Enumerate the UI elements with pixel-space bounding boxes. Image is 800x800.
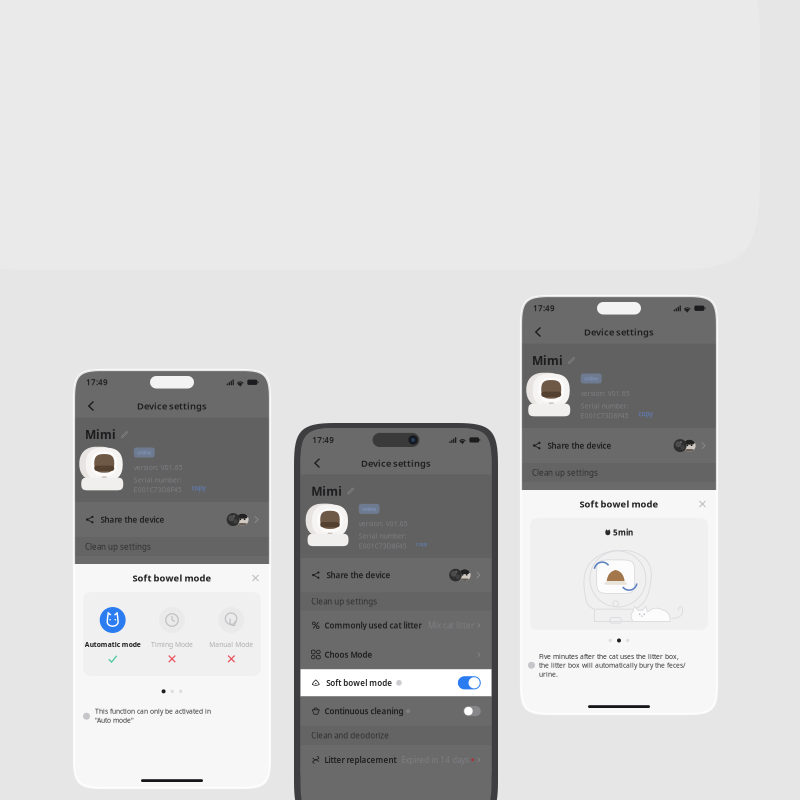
staticText: Clean up settings (532, 467, 598, 478)
staticText: Manual Mode (209, 640, 253, 649)
staticText: Serial number: (134, 475, 182, 484)
staticText: Device settings (361, 457, 431, 469)
button[interactable]: Share the device (300, 558, 491, 592)
staticText: Share the device (326, 570, 390, 580)
staticText: Device settings (584, 326, 654, 338)
button[interactable]: Close (694, 495, 711, 512)
staticText: E001C73D8F45 (581, 411, 629, 420)
staticText: copy (416, 540, 428, 547)
staticText: online (137, 449, 151, 456)
button[interactable]: Close (247, 569, 264, 586)
button[interactable]: Back (82, 397, 100, 415)
staticText: Expired in 14 days (401, 754, 469, 765)
staticText: Litter replacement (325, 754, 397, 765)
staticText: Device settings (137, 400, 207, 412)
button[interactable]: Commonly used cat litter (300, 611, 491, 640)
staticText: version: V01.65 (581, 389, 630, 398)
staticText: 17:49 (533, 303, 555, 313)
staticText: E001C73D8F45 (134, 485, 182, 494)
staticText: Mix cat litter (428, 620, 474, 631)
button[interactable]: Soft bowel mode (300, 669, 491, 696)
staticText: online (584, 375, 598, 382)
button[interactable]: copy (412, 534, 428, 547)
staticText: Mimi (85, 426, 116, 442)
button[interactable]: copy (634, 403, 652, 418)
staticText: Timing Mode (151, 640, 193, 649)
button[interactable]: Share the device (521, 428, 717, 463)
staticText: copy (638, 409, 652, 418)
button[interactable]: Choos Mode (300, 640, 491, 669)
button[interactable]: Share the device (74, 502, 270, 537)
staticText: Automatic mode (85, 640, 141, 649)
staticText: Serial number: (581, 401, 629, 410)
staticText: Clean up settings (311, 596, 377, 607)
staticText: Choos Mode (325, 649, 373, 660)
staticText: Serial number: (359, 531, 407, 540)
button[interactable]: Continuous cleaning (300, 696, 491, 726)
staticText: version: V01.65 (134, 463, 183, 472)
button[interactable]: Litter replacement (300, 745, 491, 774)
staticText: copy (191, 483, 205, 492)
staticText: 17:49 (86, 377, 108, 387)
staticText: Share the device (548, 440, 612, 451)
button[interactable]: Back (529, 323, 547, 341)
button[interactable]: Back (308, 454, 326, 472)
staticText: Five minutes after the cat uses the litt… (539, 652, 685, 679)
staticText: version: V01.65 (359, 519, 408, 528)
staticText: Commonly used cat litter (325, 620, 422, 631)
staticText: E001C73D8F45 (359, 541, 407, 550)
button[interactable]: copy (187, 477, 205, 492)
staticText: Soft bowel mode (579, 498, 658, 510)
staticText: Continuous cleaning (325, 706, 404, 716)
staticText: online (362, 505, 376, 512)
staticText: Share the device (101, 514, 165, 525)
staticText: Clean up settings (85, 541, 151, 552)
staticText: 5min (613, 527, 633, 538)
staticText: This function can only be activated in "… (95, 707, 211, 725)
staticText: Mimi (311, 483, 342, 499)
staticText: 17:49 (312, 435, 334, 445)
staticText: Soft bowel mode (326, 677, 392, 688)
staticText: Mimi (532, 352, 563, 368)
staticText: Clean and deodorize (311, 730, 389, 741)
staticText: Soft bowel mode (132, 572, 211, 584)
